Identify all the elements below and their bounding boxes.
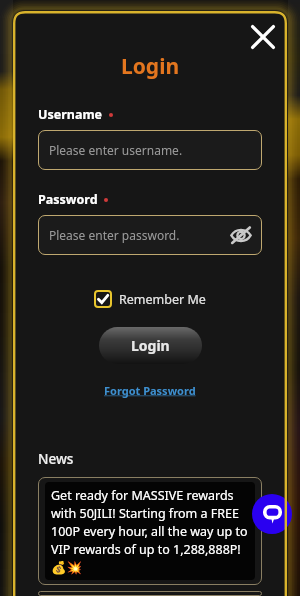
button[interactable]: Remember Me <box>13 290 287 308</box>
button[interactable]: Chat support <box>252 494 292 534</box>
button[interactable]: Close <box>243 17 283 57</box>
button[interactable]: Welcome back to 50 JILI. <box>38 591 262 596</box>
staticText: Login <box>121 52 180 81</box>
staticText: Please enter username. <box>49 142 183 158</box>
staticText: Get ready for MASSIVE rewards with 50JIL… <box>51 487 249 575</box>
staticText: Username <box>38 106 103 123</box>
button[interactable]: Please enter username. <box>38 130 262 170</box>
staticText: News <box>38 450 74 468</box>
staticText: Remember Me <box>119 291 206 308</box>
staticText: Please enter password. <box>49 227 180 243</box>
button[interactable]: Forgot Password <box>104 383 196 398</box>
button[interactable]: Get ready for MASSIVE rewards with 50JIL… <box>38 477 262 585</box>
staticText: Login <box>131 336 170 355</box>
button[interactable]: Please enter password. <box>38 215 262 255</box>
button[interactable]: Login <box>99 327 202 364</box>
staticText: Password <box>38 191 98 208</box>
button[interactable]: Show password <box>228 222 254 248</box>
